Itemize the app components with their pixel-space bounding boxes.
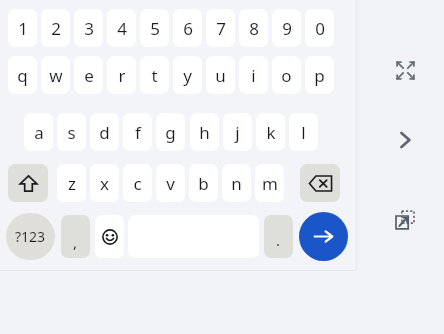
button[interactable]: i (239, 56, 268, 94)
staticText: h (199, 121, 210, 144)
staticText: 0 (315, 17, 325, 40)
button[interactable]: k (256, 113, 285, 151)
staticText: d (99, 121, 110, 144)
staticText: ?123 (15, 227, 46, 246)
button[interactable]: y (173, 56, 202, 94)
staticText: p (314, 64, 325, 87)
button[interactable]: m (255, 164, 284, 202)
staticText: f (135, 121, 141, 144)
button[interactable]: w (41, 56, 70, 94)
staticText: w (49, 64, 63, 87)
button[interactable]: t (140, 56, 169, 94)
staticText: s (67, 121, 76, 144)
button[interactable]: 4 (107, 9, 136, 47)
button[interactable]: Emoji (95, 215, 124, 258)
staticText: 9 (282, 17, 292, 40)
staticText: m (262, 172, 278, 195)
button[interactable]: g (156, 113, 185, 151)
button[interactable]: v (156, 164, 185, 202)
button[interactable]: d (90, 113, 119, 151)
button[interactable]: Period (264, 215, 293, 258)
button[interactable]: b (189, 164, 218, 202)
button[interactable]: c (123, 164, 152, 202)
staticText: 1 (18, 17, 28, 40)
staticText: r (118, 64, 126, 87)
staticText: n (231, 172, 242, 195)
staticText: q (17, 64, 28, 87)
staticText: j (235, 121, 240, 144)
button[interactable]: 7 (206, 9, 235, 47)
staticText: y (183, 64, 192, 87)
staticText: 8 (249, 17, 259, 40)
staticText: z (68, 172, 76, 195)
button[interactable]: Next (388, 123, 422, 157)
staticText: l (301, 121, 306, 144)
button[interactable]: 2 (41, 9, 70, 47)
button[interactable]: Fullscreen (388, 53, 422, 87)
staticText: c (133, 172, 142, 195)
staticText: , (73, 232, 78, 252)
button[interactable]: p (305, 56, 334, 94)
staticText: k (266, 121, 276, 144)
button[interactable]: 9 (272, 9, 301, 47)
staticText: g (165, 121, 176, 144)
button[interactable]: Open in new window (388, 203, 422, 237)
staticText: i (251, 64, 256, 87)
button[interactable]: o (272, 56, 301, 94)
button[interactable]: q (8, 56, 37, 94)
button[interactable]: x (90, 164, 119, 202)
staticText: 4 (117, 17, 127, 40)
button[interactable]: l (289, 113, 318, 151)
button[interactable]: 1 (8, 9, 37, 47)
button[interactable]: ?123 (6, 213, 55, 260)
staticText: u (215, 64, 226, 87)
staticText: 3 (84, 17, 94, 40)
button[interactable]: 6 (173, 9, 202, 47)
staticText: e (84, 64, 94, 87)
staticText: . (276, 230, 281, 250)
staticText: 2 (51, 17, 61, 40)
button[interactable]: Enter (299, 212, 348, 261)
staticText: 6 (183, 17, 193, 40)
staticText: a (34, 121, 44, 144)
button[interactable]: s (57, 113, 86, 151)
button[interactable]: r (107, 56, 136, 94)
button[interactable]: Shift (8, 164, 48, 202)
button[interactable]: 5 (140, 9, 169, 47)
button[interactable]: h (190, 113, 219, 151)
button[interactable]: Comma (61, 215, 90, 258)
button[interactable]: z (57, 164, 86, 202)
staticText: 7 (216, 17, 226, 40)
staticText: x (100, 172, 109, 195)
staticText: v (166, 172, 175, 195)
staticText: o (281, 64, 292, 87)
button[interactable]: 3 (74, 9, 103, 47)
button[interactable]: j (223, 113, 252, 151)
button[interactable]: 0 (305, 9, 334, 47)
button[interactable]: u (206, 56, 235, 94)
staticText: 5 (150, 17, 160, 40)
button[interactable]: 8 (239, 9, 268, 47)
button[interactable]: a (24, 113, 53, 151)
button[interactable]: e (74, 56, 103, 94)
button[interactable]: n (222, 164, 251, 202)
button[interactable]: Backspace (300, 164, 340, 202)
staticText: t (151, 64, 158, 87)
staticText: b (198, 172, 209, 195)
button[interactable]: f (123, 113, 152, 151)
